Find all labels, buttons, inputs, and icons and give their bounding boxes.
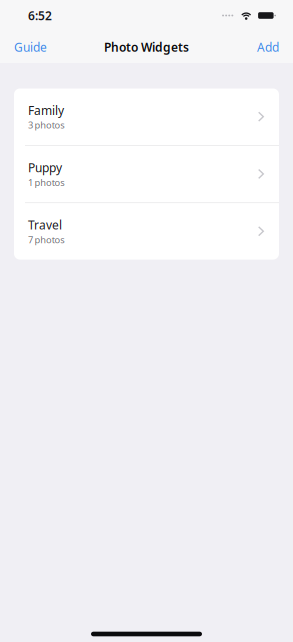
staticText: Travel xyxy=(28,217,62,233)
button[interactable]: Puppy xyxy=(14,146,279,202)
button[interactable]: Travel xyxy=(14,203,279,260)
staticText: Add xyxy=(257,39,279,55)
button[interactable]: Family xyxy=(14,88,279,145)
staticText: 7 photos xyxy=(28,233,64,246)
staticText: Family xyxy=(28,102,64,118)
staticText: Photo Widgets xyxy=(104,39,189,55)
staticText: Puppy xyxy=(28,160,62,175)
button[interactable]: Add xyxy=(255,33,281,61)
staticText: 6:52 xyxy=(28,7,52,23)
staticText: 1 photos xyxy=(28,176,64,188)
button[interactable]: Guide xyxy=(12,33,49,61)
staticText: 3 photos xyxy=(28,119,64,131)
staticText: Guide xyxy=(14,39,47,55)
